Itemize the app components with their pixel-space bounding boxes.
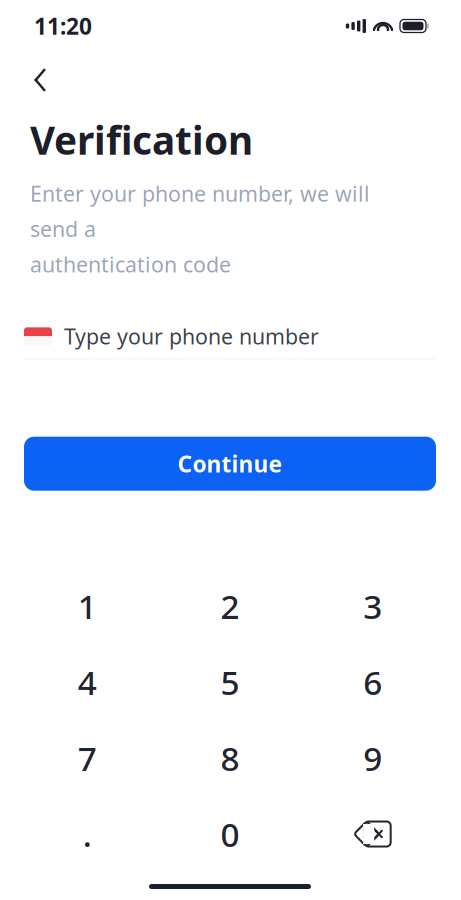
- button[interactable]: 7: [16, 720, 159, 796]
- button[interactable]: Type your phone number: [0, 314, 460, 359]
- button[interactable]: 2: [159, 568, 301, 644]
- button[interactable]: Back: [18, 58, 62, 102]
- button[interactable]: 4: [16, 644, 159, 720]
- button[interactable]: 5: [159, 644, 301, 720]
- staticText: Continue: [177, 449, 282, 479]
- button[interactable]: Continue: [24, 437, 436, 491]
- staticText: 1: [78, 584, 97, 628]
- button[interactable]: 8: [159, 720, 301, 796]
- button[interactable]: 6: [301, 644, 444, 720]
- button[interactable]: .: [16, 796, 159, 872]
- staticText: Enter your phone number, we will send a …: [30, 179, 370, 278]
- button[interactable]: 0: [159, 796, 301, 872]
- button[interactable]: 3: [301, 568, 444, 644]
- staticText: 6: [363, 660, 382, 704]
- staticText: 2: [220, 584, 239, 628]
- button[interactable]: 1: [16, 568, 159, 644]
- staticText: 8: [220, 736, 239, 780]
- staticText: Verification: [30, 114, 253, 165]
- staticText: 5: [220, 660, 239, 704]
- staticText: 7: [78, 736, 97, 780]
- button[interactable]: 9: [301, 720, 444, 796]
- button[interactable]: Delete: [301, 796, 444, 872]
- staticText: 0: [220, 812, 239, 856]
- staticText: .: [83, 812, 92, 856]
- staticText: 9: [363, 736, 382, 780]
- staticText: 3: [363, 584, 382, 628]
- staticText: 11:20: [34, 11, 92, 41]
- staticText: Type your phone number: [64, 322, 319, 350]
- staticText: 4: [78, 660, 97, 704]
